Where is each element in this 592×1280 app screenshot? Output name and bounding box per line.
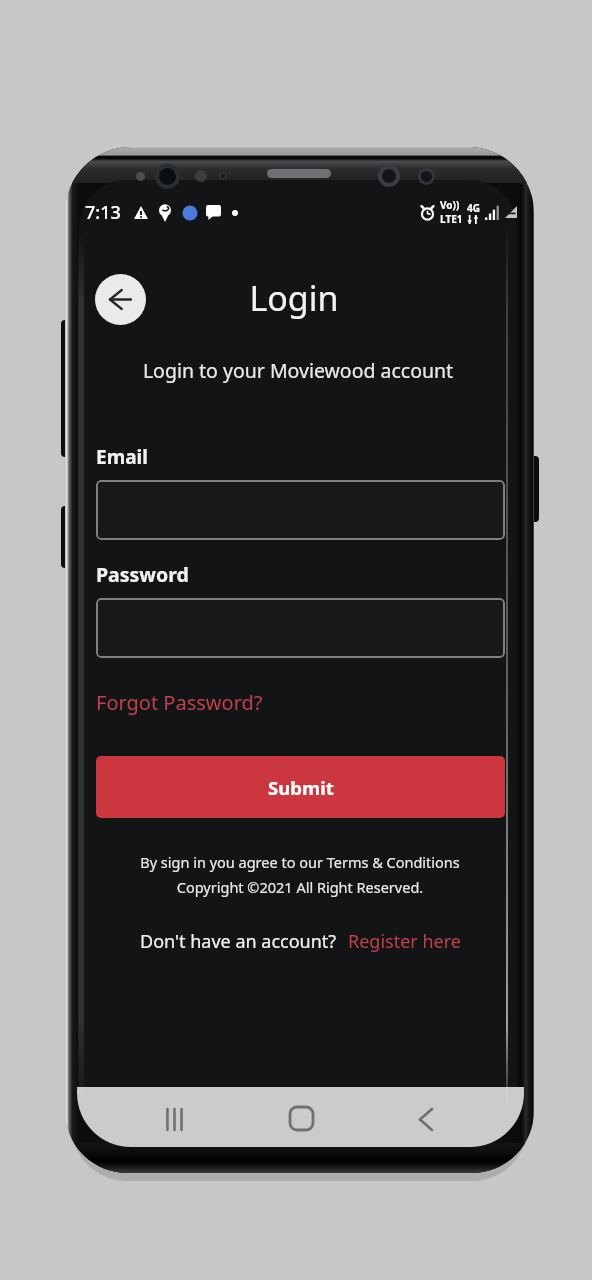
staticText: LTE1 [440, 212, 463, 226]
staticText: Don't have an account? [140, 929, 337, 954]
button[interactable]: Recent apps [150, 1095, 198, 1143]
staticText: Register here [348, 929, 461, 954]
staticText: Copyright ©2021 All Right Reserved. [88, 877, 512, 897]
button[interactable]: Back [402, 1095, 450, 1143]
button[interactable]: Home [277, 1094, 325, 1142]
staticText: Password [96, 561, 189, 588]
staticText: 7:13 [85, 200, 121, 225]
staticText: Vo)) [440, 198, 460, 212]
button[interactable] [96, 598, 505, 658]
button[interactable]: Forgot Password? [96, 689, 263, 716]
button[interactable]: Back [95, 274, 146, 325]
button[interactable]: Register here [348, 929, 461, 954]
staticText: Login to your Moviewood account [86, 357, 510, 384]
staticText: Submit [268, 775, 334, 800]
button[interactable]: Submit [96, 756, 505, 818]
staticText: Forgot Password? [96, 689, 263, 716]
button[interactable] [96, 480, 505, 540]
staticText: Login [82, 275, 506, 321]
staticText: 4G [467, 201, 480, 215]
staticText: By sign in you agree to our Terms & Cond… [88, 852, 512, 872]
staticText: Email [96, 444, 148, 470]
